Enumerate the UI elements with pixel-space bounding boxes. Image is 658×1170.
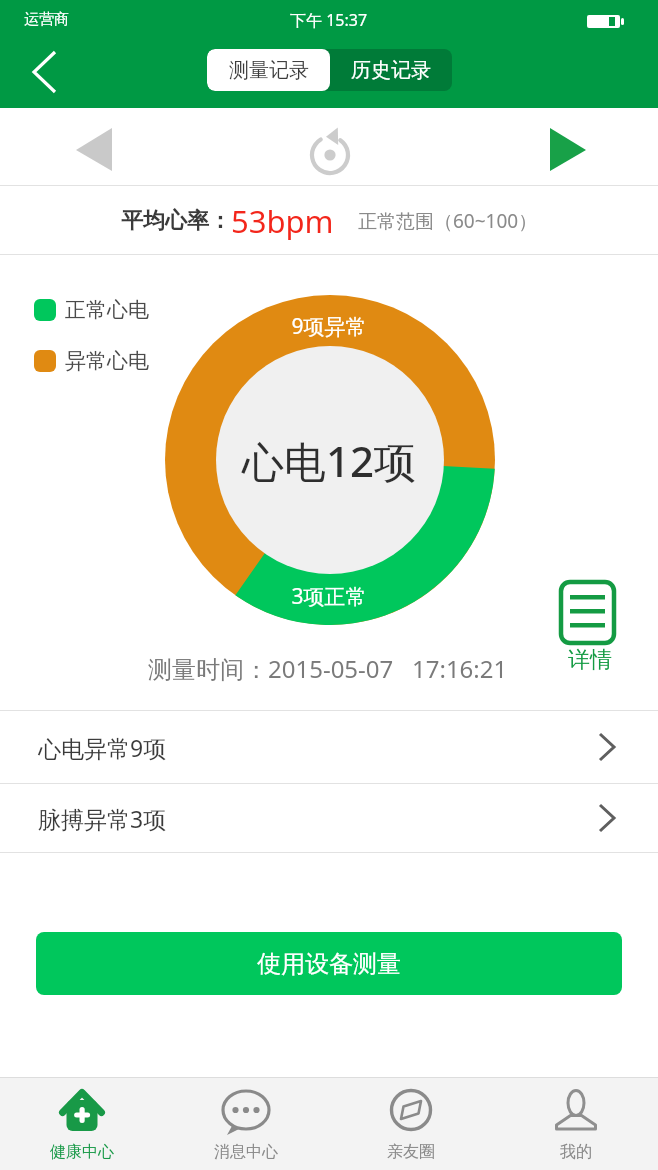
button[interactable]: 详情 bbox=[552, 578, 628, 678]
staticText: 消息中心 bbox=[214, 1142, 278, 1162]
staticText: 异常心电 bbox=[65, 348, 149, 374]
button[interactable]: 心电异常9项 bbox=[0, 711, 658, 783]
button[interactable]: 测量记录 bbox=[207, 49, 330, 91]
staticText: 正常心电 bbox=[65, 297, 149, 323]
button[interactable] bbox=[302, 126, 358, 182]
staticText: 53bpm bbox=[231, 200, 334, 242]
button[interactable] bbox=[530, 118, 598, 168]
staticText: 心电12项 bbox=[0, 432, 658, 489]
button[interactable]: 我的 bbox=[493, 1077, 658, 1170]
staticText: 运营商 bbox=[24, 10, 69, 29]
staticText: 亲友圈 bbox=[387, 1142, 435, 1162]
button[interactable] bbox=[60, 118, 128, 168]
staticText: 使用设备测量 bbox=[257, 949, 401, 979]
button[interactable] bbox=[14, 42, 70, 102]
button[interactable]: 使用设备测量 bbox=[36, 932, 622, 995]
button[interactable]: 亲友圈 bbox=[328, 1077, 493, 1170]
staticText: 脉搏异常3项 bbox=[38, 803, 167, 834]
staticText: 历史记录 bbox=[351, 58, 431, 83]
staticText: 我的 bbox=[560, 1142, 592, 1162]
staticText: 正常范围（60~100） bbox=[358, 208, 538, 234]
staticText: 测量记录 bbox=[229, 58, 309, 83]
staticText: 健康中心 bbox=[50, 1142, 114, 1162]
staticText: 测量时间：2015-05-07 17:16:21 bbox=[148, 652, 508, 685]
staticText: 心电异常9项 bbox=[38, 732, 167, 763]
staticText: 下午 15:37 bbox=[290, 9, 368, 31]
staticText: 3项正常 bbox=[0, 582, 658, 611]
staticText: 平均心率： bbox=[121, 207, 231, 235]
button[interactable]: 健康中心 bbox=[0, 1077, 164, 1170]
button[interactable]: 消息中心 bbox=[164, 1077, 328, 1170]
staticText: 详情 bbox=[568, 646, 612, 674]
button[interactable]: 脉搏异常3项 bbox=[0, 784, 658, 852]
button[interactable]: 历史记录 bbox=[330, 49, 452, 91]
staticText: 9项异常 bbox=[0, 312, 658, 341]
